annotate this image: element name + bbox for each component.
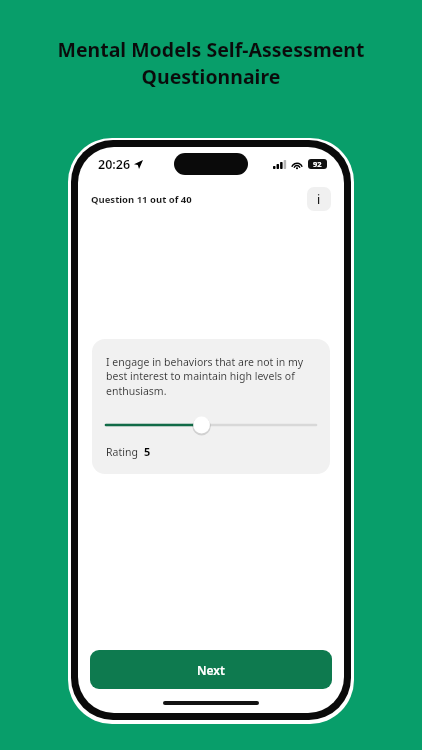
staticText: I engage in behaviors that are not in my…	[106, 355, 316, 398]
button[interactable]: Information	[307, 187, 331, 211]
staticText: Next	[197, 662, 225, 678]
staticText: Question 11 out of 40	[91, 193, 192, 206]
button[interactable]: Next	[90, 650, 332, 689]
button[interactable]: I engage in behaviors that are not in my…	[92, 339, 330, 474]
staticText: i	[317, 191, 321, 207]
staticText: Rating	[106, 445, 138, 459]
staticText: 20:26	[98, 156, 131, 173]
button[interactable]	[106, 415, 316, 435]
staticText: Mental Models Self-Assessment Questionna…	[22, 36, 400, 90]
staticText: 5	[144, 444, 151, 459]
staticText: 92	[313, 159, 322, 169]
